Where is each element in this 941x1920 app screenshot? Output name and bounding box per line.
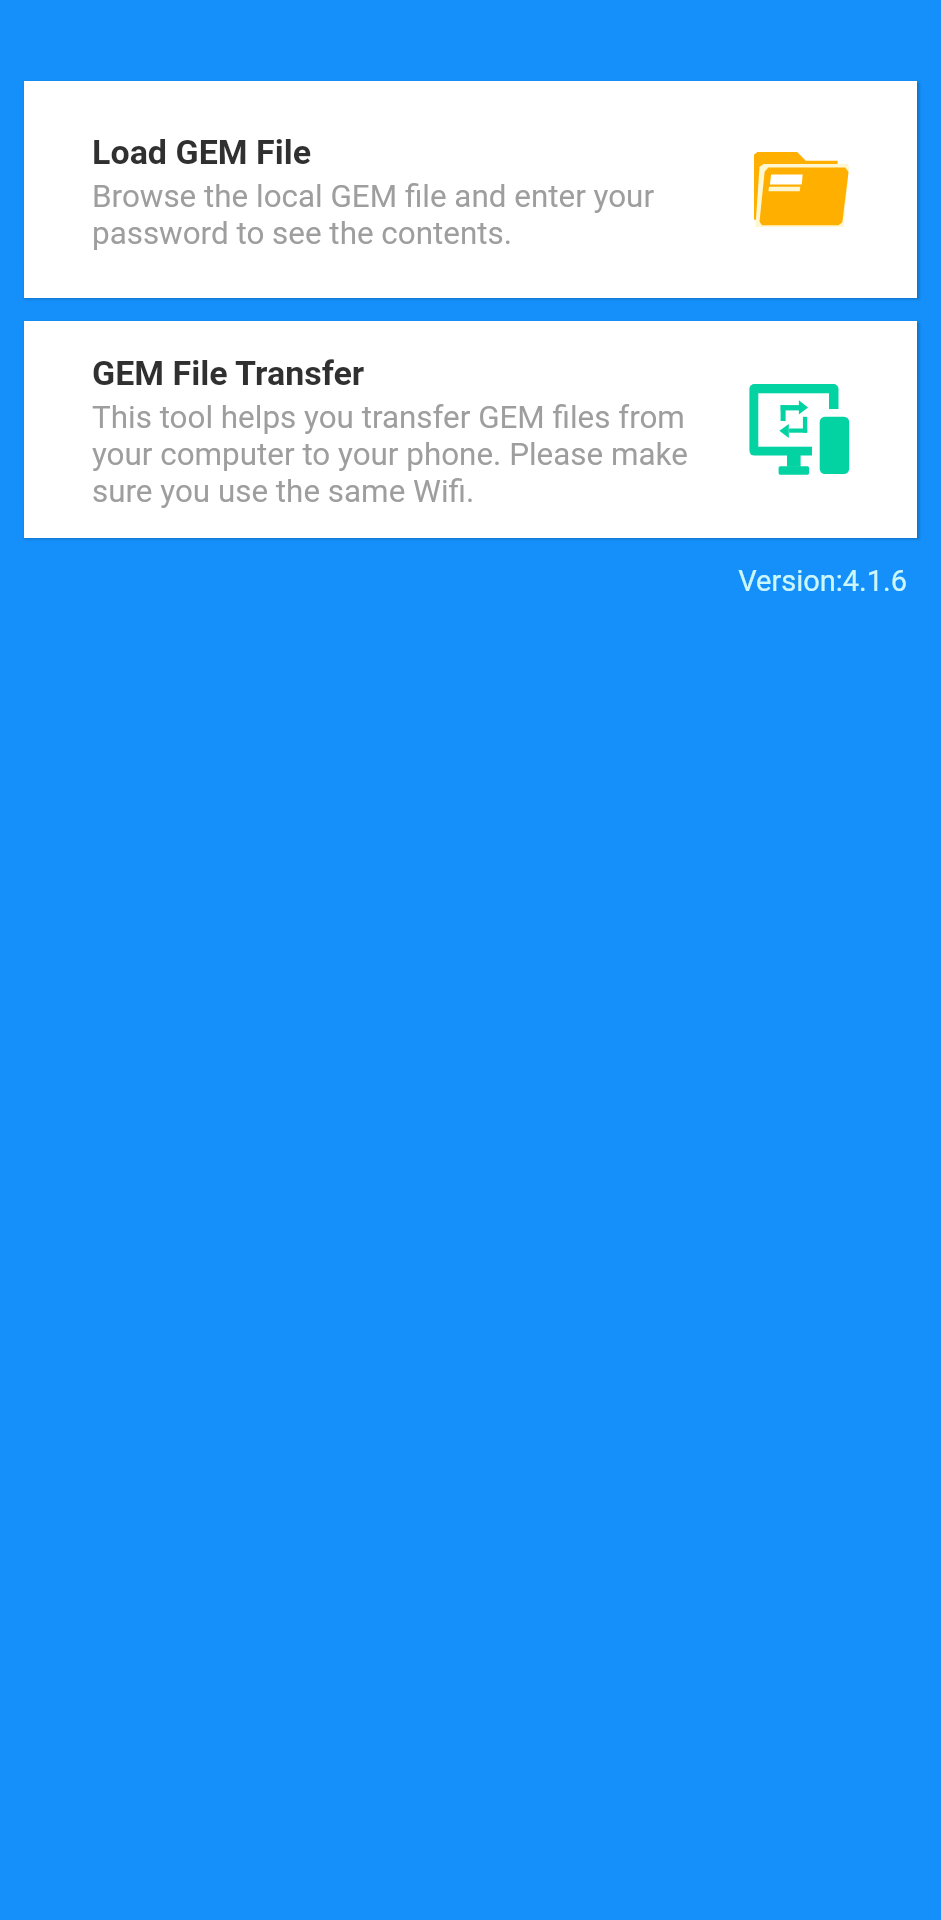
staticText: This tool helps you transfer GEM files f… [92, 399, 696, 510]
staticText: Version:4.1.6 [0, 564, 907, 598]
button[interactable]: Load GEM File [24, 81, 917, 298]
staticText: GEM File Transfer [92, 353, 365, 393]
other: GEM File Transfer [749, 384, 850, 475]
other: Load GEM File [754, 152, 849, 227]
button[interactable]: GEM File Transfer [24, 321, 917, 538]
staticText: Load GEM File [92, 132, 312, 172]
staticText: Browse the local GEM file and enter your… [92, 178, 696, 252]
